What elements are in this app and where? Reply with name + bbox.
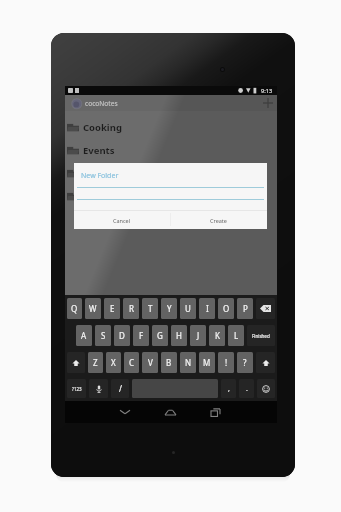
- staticText: ,: [228, 384, 230, 394]
- button[interactable]: N: [180, 352, 196, 373]
- button[interactable]: Shift: [256, 352, 275, 373]
- button[interactable]: Shift: [67, 352, 85, 373]
- staticText: G: [157, 330, 163, 341]
- staticText: S: [101, 330, 106, 341]
- staticText: New Folder: [81, 171, 119, 181]
- staticText: T: [148, 303, 153, 314]
- button[interactable]: K: [209, 325, 225, 346]
- button[interactable]: Home: [159, 401, 181, 423]
- staticText: E: [110, 303, 115, 314]
- staticText: R: [129, 303, 134, 314]
- button[interactable]: Back: [114, 401, 136, 423]
- staticText: O: [223, 303, 230, 314]
- staticText: D: [119, 330, 125, 341]
- staticText: Cooking: [83, 121, 122, 134]
- button[interactable]: R: [123, 298, 139, 319]
- staticText: /: [119, 383, 122, 394]
- staticText: N: [185, 357, 192, 368]
- button[interactable]: J: [190, 325, 206, 346]
- button[interactable]: I: [199, 298, 215, 319]
- button[interactable]: B: [161, 352, 177, 373]
- button[interactable]: /: [111, 379, 129, 398]
- button[interactable]: Add: [259, 95, 277, 111]
- button[interactable]: O: [218, 298, 234, 319]
- staticText: Finished: [252, 333, 270, 339]
- button[interactable]: P: [237, 298, 253, 319]
- button[interactable]: [65, 162, 277, 185]
- staticText: A: [81, 330, 87, 341]
- button[interactable]: U: [180, 298, 196, 319]
- button[interactable]: Voice input: [89, 379, 108, 398]
- staticText: Y: [167, 303, 172, 314]
- staticText: W: [89, 303, 97, 314]
- button[interactable]: ,: [221, 379, 236, 398]
- staticText: H: [176, 330, 182, 341]
- staticText: M: [203, 357, 211, 368]
- button[interactable]: !: [218, 352, 234, 373]
- staticText: .: [246, 384, 248, 394]
- button[interactable]: Recents: [204, 401, 226, 423]
- button[interactable]: Finished: [247, 325, 275, 346]
- button[interactable]: Q: [67, 298, 82, 319]
- button[interactable]: M: [199, 352, 215, 373]
- button[interactable]: Emoji: [257, 379, 275, 398]
- staticText: I: [206, 303, 209, 314]
- staticText: B: [166, 357, 172, 368]
- staticText: F: [139, 330, 144, 341]
- button[interactable]: D: [114, 325, 130, 346]
- button[interactable]: [65, 185, 277, 208]
- staticText: !: [225, 357, 228, 368]
- staticText: Z: [93, 357, 98, 368]
- button[interactable]: F: [133, 325, 149, 346]
- button[interactable]: A: [76, 325, 92, 346]
- button[interactable]: Cancel: [74, 211, 170, 229]
- staticText: Events: [83, 144, 115, 157]
- button[interactable]: ?: [237, 352, 253, 373]
- staticText: J: [197, 330, 200, 341]
- button[interactable]: C: [124, 352, 139, 373]
- button[interactable]: S: [95, 325, 111, 346]
- button[interactable]: E: [104, 298, 120, 319]
- button[interactable]: Events: [65, 139, 277, 162]
- button[interactable]: V: [142, 352, 158, 373]
- button[interactable]: X: [106, 352, 121, 373]
- button[interactable]: Create: [170, 211, 267, 229]
- staticText: Create: [210, 217, 227, 224]
- button[interactable]: L: [228, 325, 244, 346]
- staticText: U: [185, 303, 191, 314]
- staticText: K: [215, 330, 220, 341]
- button[interactable]: Backspace: [256, 298, 275, 319]
- button[interactable]: T: [142, 298, 158, 319]
- staticText: ?123: [72, 386, 82, 392]
- button[interactable]: ?123: [67, 379, 86, 398]
- staticText: ?: [243, 357, 247, 368]
- staticText: L: [234, 330, 239, 341]
- button[interactable]: G: [152, 325, 168, 346]
- button[interactable]: Cooking: [65, 116, 277, 139]
- staticText: P: [243, 303, 248, 314]
- staticText: cocoNotes: [85, 99, 118, 108]
- button[interactable]: .: [239, 379, 254, 398]
- staticText: Cancel: [113, 217, 131, 224]
- staticText: V: [148, 357, 153, 368]
- staticText: 9:13: [261, 87, 273, 95]
- button[interactable]: H: [171, 325, 187, 346]
- staticText: C: [129, 357, 135, 368]
- staticText: Q: [71, 303, 78, 314]
- staticText: X: [111, 357, 116, 368]
- button[interactable]: Y: [161, 298, 177, 319]
- button[interactable]: Z: [88, 352, 103, 373]
- button[interactable]: W: [85, 298, 101, 319]
